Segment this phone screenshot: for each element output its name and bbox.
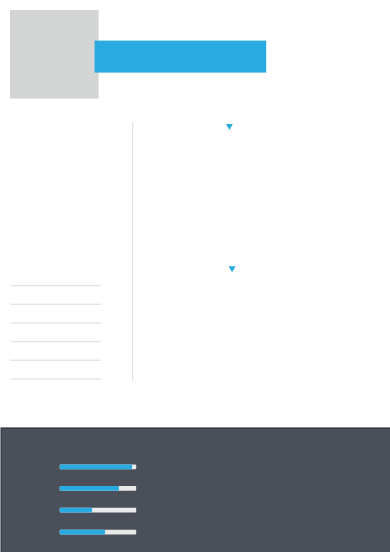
button[interactable]: Expand [226, 124, 233, 131]
button[interactable]: Headline [95, 41, 266, 73]
button[interactable]: Progress 1 [60, 464, 137, 469]
button[interactable]: Progress 2 [60, 486, 137, 491]
button[interactable]: Image placeholder [10, 10, 99, 99]
button[interactable]: Progress 3 [60, 508, 137, 513]
button[interactable]: Expand [228, 266, 235, 273]
button[interactable]: Progress 4 [60, 530, 137, 535]
